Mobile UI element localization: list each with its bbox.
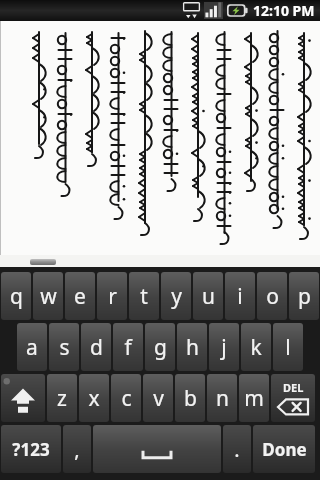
button[interactable]: r <box>97 272 127 320</box>
staticText: y <box>171 282 182 311</box>
button[interactable]: s <box>49 323 79 371</box>
staticText: n <box>216 384 229 413</box>
button[interactable]: k <box>241 323 271 371</box>
button[interactable]: h <box>177 323 207 371</box>
staticText: o <box>266 282 279 311</box>
button[interactable]: t <box>129 272 159 320</box>
button[interactable]: ?123 <box>1 425 61 473</box>
button[interactable]: Done <box>253 425 315 473</box>
button[interactable]: Space <box>93 425 221 473</box>
staticText: f <box>124 333 132 362</box>
staticText: j <box>221 333 227 362</box>
button[interactable]: l <box>273 323 303 371</box>
staticText: g <box>154 333 167 362</box>
staticText: 12:10 PM <box>253 1 315 20</box>
staticText: . <box>234 436 240 463</box>
staticText: r <box>108 282 117 311</box>
staticText: d <box>90 333 103 362</box>
staticText: k <box>250 333 262 362</box>
button[interactable]: m <box>239 374 269 422</box>
button[interactable]: n <box>207 374 237 422</box>
staticText: DEL <box>283 380 304 395</box>
staticText: e <box>74 282 86 311</box>
button[interactable]: x <box>79 374 109 422</box>
button[interactable]: Shift <box>1 374 45 422</box>
button[interactable]: u <box>193 272 223 320</box>
staticText: b <box>184 384 197 413</box>
button[interactable]: j <box>209 323 239 371</box>
button[interactable]: w <box>33 272 63 320</box>
button[interactable]: f <box>113 323 143 371</box>
staticText: p <box>298 282 311 311</box>
staticText: i <box>237 282 243 311</box>
staticText: t <box>140 282 148 311</box>
staticText: v <box>153 384 164 413</box>
staticText: ?123 <box>12 438 50 461</box>
staticText: u <box>202 282 215 311</box>
staticText: s <box>59 333 70 362</box>
button[interactable]: y <box>161 272 191 320</box>
button[interactable]: i <box>225 272 255 320</box>
staticText: q <box>10 282 23 311</box>
staticText: h <box>186 333 199 362</box>
button[interactable]: a <box>17 323 47 371</box>
button[interactable]: b <box>175 374 205 422</box>
button[interactable]: v <box>143 374 173 422</box>
staticText: z <box>57 384 67 413</box>
staticText: w <box>40 282 57 311</box>
staticText: Done <box>262 438 307 461</box>
staticText: l <box>285 333 291 362</box>
button[interactable]: q <box>1 272 31 320</box>
staticText: c <box>121 384 132 413</box>
staticText: m <box>244 384 264 413</box>
button[interactable]: g <box>145 323 175 371</box>
button[interactable]: . <box>223 425 251 473</box>
staticText: x <box>88 384 100 413</box>
button[interactable]: Delete <box>271 374 315 422</box>
button[interactable]: c <box>111 374 141 422</box>
button[interactable]: , <box>63 425 91 473</box>
button[interactable]: z <box>47 374 77 422</box>
button[interactable]: p <box>289 272 319 320</box>
button[interactable]: d <box>81 323 111 371</box>
staticText: , <box>74 436 80 463</box>
button[interactable]: o <box>257 272 287 320</box>
staticText: a <box>26 333 38 362</box>
button[interactable]: e <box>65 272 95 320</box>
